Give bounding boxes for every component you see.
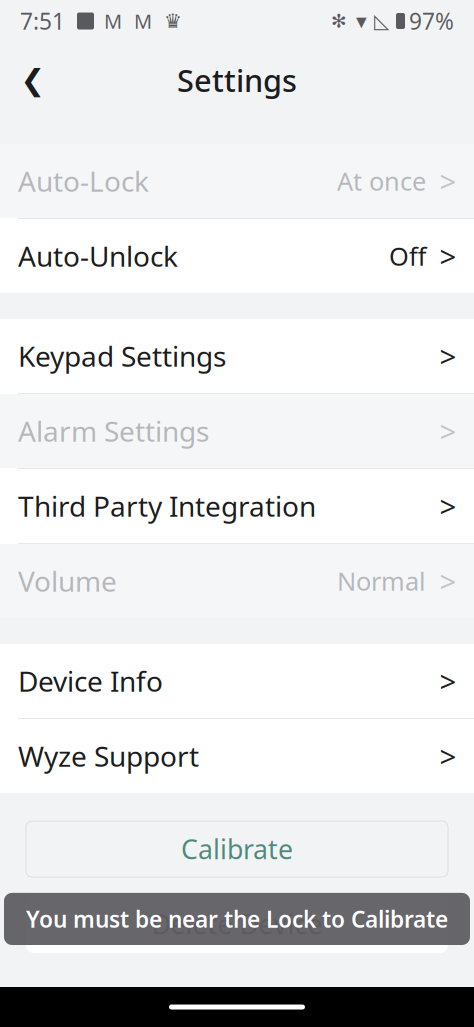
staticText: Keypad Settings: [18, 337, 226, 375]
staticText: >: [439, 236, 456, 275]
staticText: Auto-Lock: [18, 162, 149, 200]
button[interactable]: Delete Device: [26, 895, 448, 953]
button[interactable]: Calibrate: [26, 821, 448, 877]
staticText: Third Party Integration: [18, 487, 316, 525]
staticText: ▾: [356, 9, 367, 33]
staticText: >: [439, 411, 456, 450]
staticText: Device Info: [18, 662, 163, 700]
staticText: Calibrate: [181, 831, 293, 867]
button[interactable]: Auto-Lock: [0, 144, 474, 218]
staticText: >: [439, 736, 456, 775]
button[interactable]: Wyze Support: [0, 719, 474, 793]
staticText: >: [439, 161, 456, 200]
staticText: >: [439, 486, 456, 525]
staticText: Wyze Support: [18, 737, 199, 775]
staticText: ♛: [164, 10, 182, 32]
button[interactable]: Back: [10, 54, 56, 106]
staticText: Off: [389, 239, 426, 273]
staticText: M: [104, 8, 122, 34]
staticText: Auto-Unlock: [18, 237, 178, 275]
staticText: Settings: [177, 60, 297, 100]
staticText: ❮: [20, 63, 45, 97]
staticText: 97%: [409, 6, 454, 36]
button[interactable]: Alarm Settings: [0, 394, 474, 468]
staticText: Alarm Settings: [18, 412, 209, 450]
staticText: You must be near the Lock to Calibrate: [26, 904, 448, 934]
staticText: >: [439, 561, 456, 600]
button[interactable]: Third Party Integration: [0, 469, 474, 543]
staticText: Volume: [18, 562, 117, 600]
staticText: At once: [337, 164, 426, 198]
staticText: 7:51: [20, 6, 65, 36]
staticText: Delete Device: [151, 906, 322, 942]
staticText: >: [439, 336, 456, 375]
button[interactable]: Keypad Settings: [0, 319, 474, 393]
staticText: >: [439, 661, 456, 700]
staticText: ✻: [331, 10, 347, 32]
staticText: Normal: [337, 564, 426, 598]
button[interactable]: Auto-Unlock: [0, 219, 474, 293]
button[interactable]: Volume: [0, 544, 474, 618]
staticText: M: [134, 8, 152, 34]
button[interactable]: Device Info: [0, 644, 474, 718]
staticText: ◺: [374, 10, 389, 32]
